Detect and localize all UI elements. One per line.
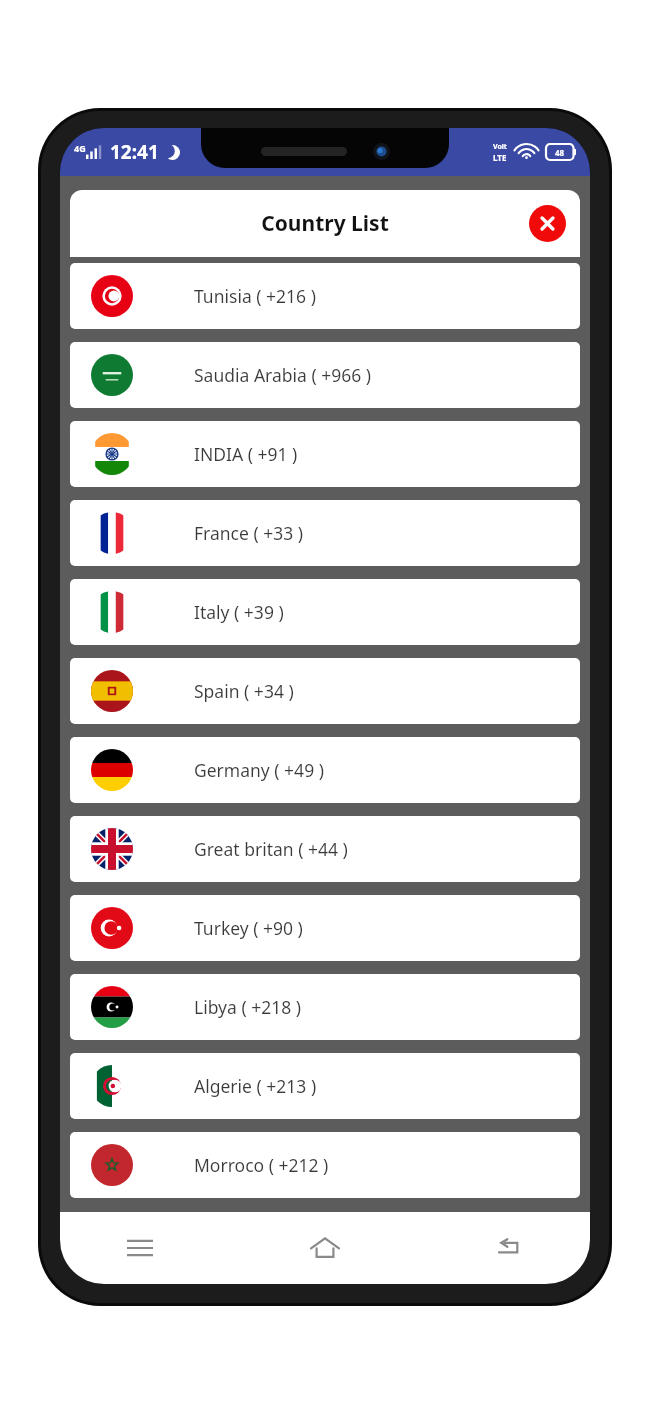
button[interactable]: France ( +33 ) <box>70 500 580 566</box>
staticText: Volt <box>493 142 507 152</box>
button[interactable]: Germany ( +49 ) <box>70 737 580 803</box>
button[interactable]: Close <box>529 205 566 242</box>
staticText: Country List <box>261 209 389 238</box>
staticText: Italy ( +39 ) <box>194 600 284 624</box>
button[interactable]: Turkey ( +90 ) <box>70 895 580 961</box>
button[interactable]: Algerie ( +213 ) <box>70 1053 580 1119</box>
staticText: Turkey ( +90 ) <box>194 916 303 940</box>
staticText: Spain ( +34 ) <box>194 679 294 703</box>
staticText: 4G <box>74 142 86 154</box>
staticText: Morroco ( +212 ) <box>194 1153 329 1177</box>
staticText: France ( +33 ) <box>194 521 304 545</box>
staticText: 12:41 <box>110 139 159 165</box>
button[interactable]: Back <box>484 1222 536 1274</box>
staticText: a <box>566 1150 586 1196</box>
button[interactable]: Home <box>299 1222 351 1274</box>
button[interactable]: Italy ( +39 ) <box>70 579 580 645</box>
staticText: Libya ( +218 ) <box>194 995 302 1019</box>
button[interactable]: Recent apps <box>114 1222 166 1274</box>
staticText: INDIA ( +91 ) <box>194 442 298 466</box>
button[interactable]: Tunisia ( +216 ) <box>70 263 580 329</box>
staticText: 48 <box>555 147 565 158</box>
staticText: Saudia Arabia ( +966 ) <box>194 363 372 387</box>
button[interactable]: Saudia Arabia ( +966 ) <box>70 342 580 408</box>
button[interactable]: Spain ( +34 ) <box>70 658 580 724</box>
staticText: Great britan ( +44 ) <box>194 837 348 861</box>
button[interactable]: Great britan ( +44 ) <box>70 816 580 882</box>
button[interactable]: Libya ( +218 ) <box>70 974 580 1040</box>
staticText: LTE <box>493 152 507 163</box>
staticText: Germany ( +49 ) <box>194 758 324 782</box>
button[interactable]: Morroco ( +212 ) <box>70 1132 580 1198</box>
staticText: Algerie ( +213 ) <box>194 1074 317 1098</box>
staticText: Tunisia ( +216 ) <box>194 284 316 308</box>
button[interactable]: INDIA ( +91 ) <box>70 421 580 487</box>
